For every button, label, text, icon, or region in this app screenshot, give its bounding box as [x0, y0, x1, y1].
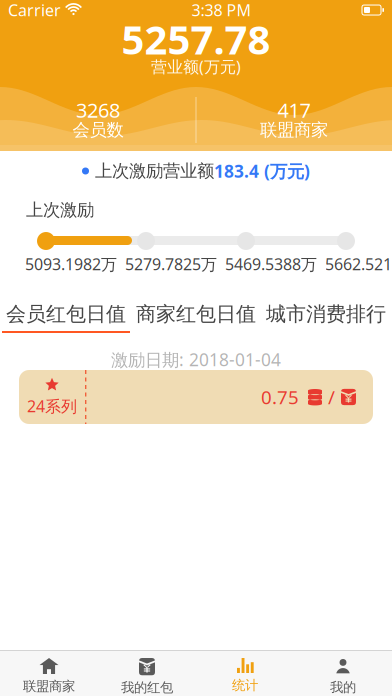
- staticText: 5662.5217万: [325, 253, 392, 275]
- staticText: Carrier: [8, 0, 61, 21]
- staticText: 城市消费排行: [266, 302, 386, 326]
- button[interactable]: 我的红包: [98, 651, 196, 696]
- button[interactable]: 商家红包日值: [131, 302, 261, 349]
- staticText: 5257.78: [121, 12, 270, 65]
- staticText: /: [328, 385, 335, 409]
- staticText: 上次激励营业额: [95, 160, 214, 182]
- staticText: 5279.7825万: [125, 253, 217, 275]
- staticText: 183.4 (万元): [214, 159, 310, 182]
- staticText: 营业额(万元): [151, 56, 241, 77]
- button[interactable]: 城市消费排行: [261, 302, 391, 349]
- staticText: 3268: [76, 97, 120, 123]
- staticText: 我的: [330, 679, 356, 695]
- staticText: 商家红包日值: [136, 302, 256, 326]
- button[interactable]: 联盟商家: [0, 651, 98, 696]
- staticText: 上次激励: [26, 199, 94, 221]
- button[interactable]: 会员红包日值: [1, 302, 131, 349]
- staticText: 417: [277, 97, 310, 123]
- staticText: 统计: [232, 677, 258, 693]
- staticText: 5469.5388万: [225, 253, 317, 275]
- button[interactable]: 我的: [294, 651, 392, 696]
- staticText: 0.75: [261, 385, 299, 409]
- staticText: 5093.1982万: [25, 253, 117, 275]
- staticText: 联盟商家: [260, 119, 328, 141]
- button[interactable]: 统计: [196, 651, 294, 696]
- staticText: 会员数: [72, 119, 123, 141]
- staticText: 3:38 PM: [191, 0, 251, 21]
- staticText: 我的红包: [121, 679, 173, 696]
- staticText: 联盟商家: [23, 678, 75, 694]
- staticText: 24系列: [27, 395, 77, 417]
- staticText: 会员红包日值: [6, 302, 126, 326]
- staticText: 激励日期: 2018-01-04: [111, 348, 281, 371]
